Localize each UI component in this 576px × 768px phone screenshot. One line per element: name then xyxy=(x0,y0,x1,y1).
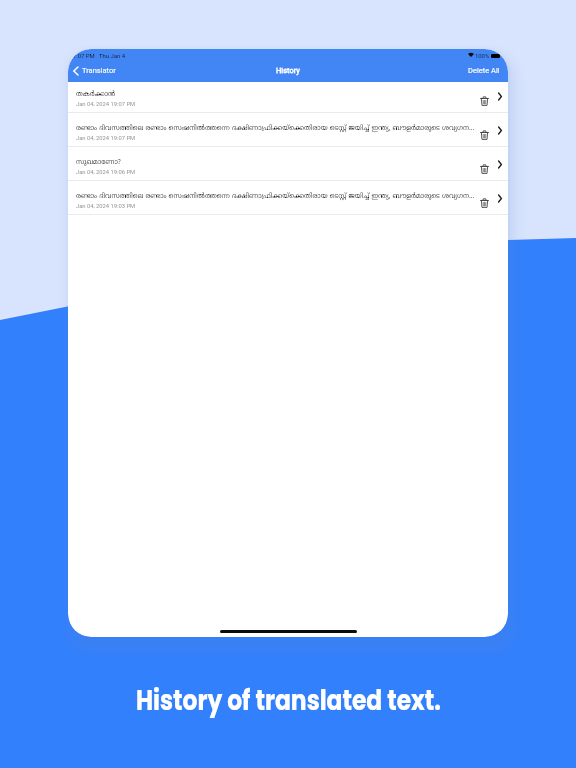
button[interactable]: Delete xyxy=(478,196,491,209)
staticText: Thu Jan 4 xyxy=(99,53,125,60)
button[interactable]: തകർക്കാൻ xyxy=(68,82,508,113)
staticText: രണ്ടാം ദിവസത്തിലെ രണ്ടാം സെഷനിൽത്തന്നെ ദ… xyxy=(76,192,475,200)
button[interactable]: Open xyxy=(494,90,506,102)
staticText: Jan 04, 2024 19:06 PM xyxy=(76,169,136,176)
staticText: Jan 04, 2024 19:07 PM xyxy=(76,135,136,142)
staticText: തകർക്കാൻ xyxy=(76,90,116,98)
staticText: History of translated text. xyxy=(136,681,441,719)
button[interactable]: രണ്ടാം ദിവസത്തിലെ രണ്ടാം സെഷനിൽത്തന്നെ ദ… xyxy=(68,181,508,215)
staticText: Jan 04, 2024 19:03 PM xyxy=(76,203,136,210)
staticText: History xyxy=(276,66,300,75)
button[interactable]: Open xyxy=(494,158,506,170)
button[interactable]: സുഖമാണോ? xyxy=(68,147,508,181)
staticText: Delete All xyxy=(468,66,500,75)
button[interactable]: Delete All xyxy=(462,63,508,78)
staticText: സുഖമാണോ? xyxy=(76,158,121,166)
staticText: രണ്ടാം ദിവസത്തിലെ രണ്ടാം സെഷനിൽത്തന്നെ ദ… xyxy=(76,124,475,132)
button[interactable]: Translator xyxy=(68,63,122,78)
staticText: 100% xyxy=(475,53,490,60)
button[interactable]: രണ്ടാം ദിവസത്തിലെ രണ്ടാം സെഷനിൽത്തന്നെ ദ… xyxy=(68,113,508,147)
button[interactable]: Delete xyxy=(478,128,491,141)
staticText: Jan 04, 2024 19:07 PM xyxy=(76,101,136,108)
staticText: 7:07 PM xyxy=(73,53,95,60)
button[interactable]: Delete xyxy=(478,162,491,175)
button[interactable]: Delete xyxy=(478,94,491,107)
button[interactable]: Open xyxy=(494,192,506,204)
staticText: Translator xyxy=(82,66,116,75)
button[interactable]: Open xyxy=(494,124,506,136)
